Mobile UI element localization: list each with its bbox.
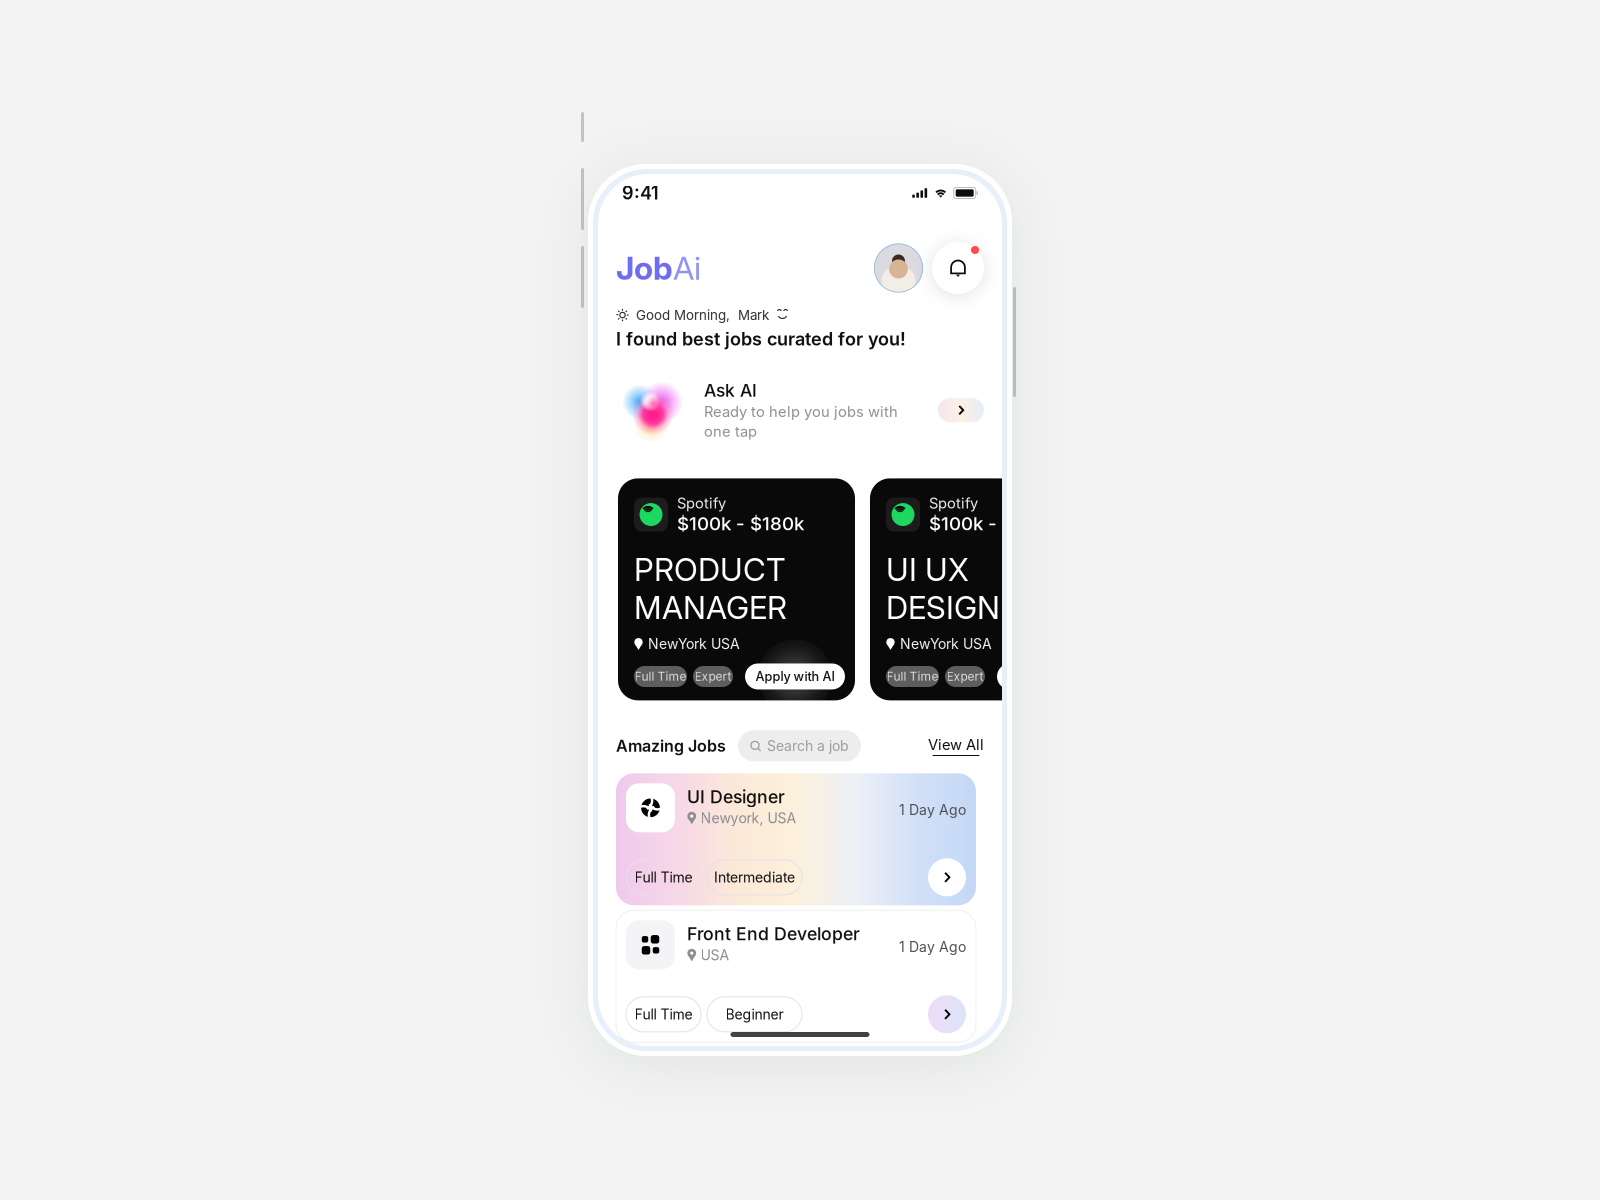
staticText: Intermediate	[714, 869, 795, 886]
staticText: Amazing Jobs	[616, 736, 726, 756]
staticText: Apply with AI	[755, 669, 834, 684]
staticText: UI Designer	[687, 786, 785, 808]
staticText: 9:41	[622, 182, 659, 204]
staticText: Full Time	[634, 869, 692, 886]
staticText: NewYork USA	[900, 635, 992, 652]
staticText: $100k - $180k	[929, 512, 1056, 535]
staticText: one tap	[704, 423, 757, 440]
staticText: Front End Developer	[687, 923, 860, 945]
staticText: 1 Day Ago	[899, 938, 966, 955]
staticText: MANAGER	[634, 589, 787, 626]
staticText: Expert	[694, 669, 731, 684]
staticText: Spotify	[677, 494, 726, 512]
button[interactable]: View All	[928, 736, 984, 756]
staticText: Expert	[946, 669, 983, 684]
staticText: Ai	[673, 249, 701, 287]
staticText: Search a job	[767, 737, 849, 754]
staticText: Full Time	[634, 1006, 692, 1023]
button[interactable]: Ask AI	[598, 380, 1002, 440]
staticText: Job	[616, 249, 673, 287]
staticText: Apply with AI	[1007, 669, 1086, 684]
staticText: Newyork, USA	[700, 810, 796, 826]
staticText: $100k - $180k	[677, 512, 804, 535]
staticText: DESIGNER	[886, 589, 1038, 626]
staticText: Spotify	[929, 494, 978, 512]
staticText: Ask AI	[704, 380, 757, 401]
staticText: NewYork USA	[648, 635, 740, 652]
button[interactable]: UI Designer	[616, 773, 976, 905]
staticText: View All	[928, 736, 984, 753]
staticText: USA	[700, 947, 729, 963]
staticText: UI UX	[886, 551, 969, 589]
staticText: PRODUCT	[634, 551, 786, 589]
button[interactable]: Notifications	[932, 242, 984, 294]
staticText: I found best jobs curated for you!	[616, 328, 906, 350]
staticText: Full Time	[634, 669, 686, 684]
staticText: Beginner	[725, 1006, 783, 1023]
staticText: 1 Day Ago	[899, 801, 966, 818]
button[interactable]: Spotify	[618, 478, 855, 700]
button[interactable]: Spotify	[870, 478, 1107, 700]
button[interactable]: Front End Developer	[616, 910, 976, 1042]
staticText: Full Time	[886, 669, 938, 684]
button[interactable]: Profile	[874, 243, 923, 292]
staticText: Good Morning, Mark	[636, 307, 769, 323]
button[interactable]: Search a job	[738, 730, 861, 761]
staticText: Ready to help you jobs with	[704, 403, 898, 421]
